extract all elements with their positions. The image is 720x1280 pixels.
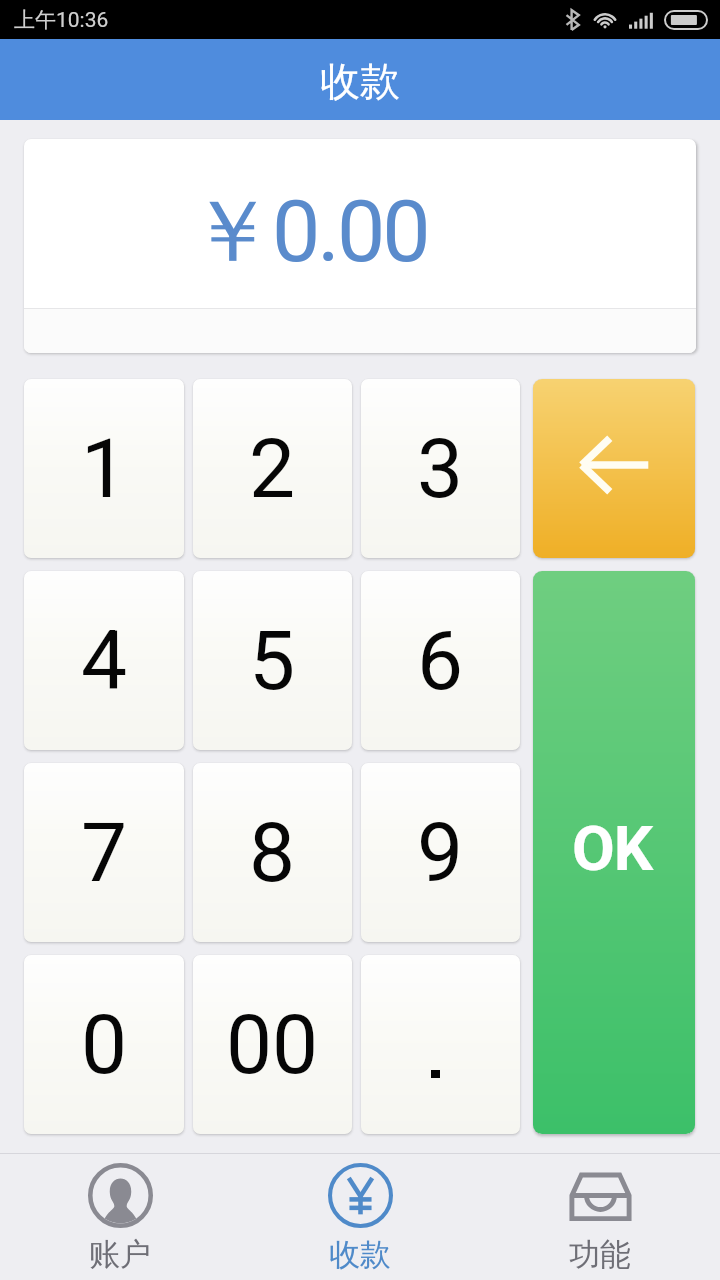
staticText: 账户: [89, 1235, 151, 1274]
staticText: OK: [572, 812, 653, 885]
button[interactable]: 8: [193, 763, 352, 942]
staticText: 5: [249, 613, 296, 709]
button[interactable]: 1: [24, 379, 184, 558]
staticText: 3: [417, 421, 464, 517]
button[interactable]: 0: [24, 955, 184, 1134]
button[interactable]: 账户: [0, 1154, 240, 1280]
staticText: 功能: [569, 1235, 631, 1274]
staticText: 8: [249, 805, 296, 901]
button[interactable]: 00: [193, 955, 352, 1134]
button[interactable]: 功能: [480, 1154, 720, 1280]
button[interactable]: 3: [361, 379, 520, 558]
button[interactable]: 2: [193, 379, 352, 558]
button[interactable]: 5: [193, 571, 352, 750]
staticText: 4: [81, 613, 128, 709]
staticText: 00: [226, 997, 319, 1093]
staticText: 6: [417, 613, 464, 709]
staticText: 0: [81, 997, 128, 1093]
staticText: ￥0.00: [189, 178, 428, 286]
button[interactable]: 9: [361, 763, 520, 942]
button[interactable]: [361, 955, 520, 1134]
staticText: 7: [81, 805, 128, 901]
staticText: 上午10:36: [14, 7, 109, 33]
button[interactable]: 7: [24, 763, 184, 942]
staticText: 收款: [320, 56, 400, 106]
button[interactable]: 收款: [240, 1154, 480, 1280]
button[interactable]: OK: [533, 571, 695, 1134]
staticText: 2: [249, 421, 296, 517]
staticText: 1: [81, 421, 128, 517]
staticText: 9: [417, 805, 464, 901]
button[interactable]: 6: [361, 571, 520, 750]
button[interactable]: Backspace: [533, 379, 695, 558]
staticText: 收款: [329, 1235, 391, 1274]
button[interactable]: 4: [24, 571, 184, 750]
